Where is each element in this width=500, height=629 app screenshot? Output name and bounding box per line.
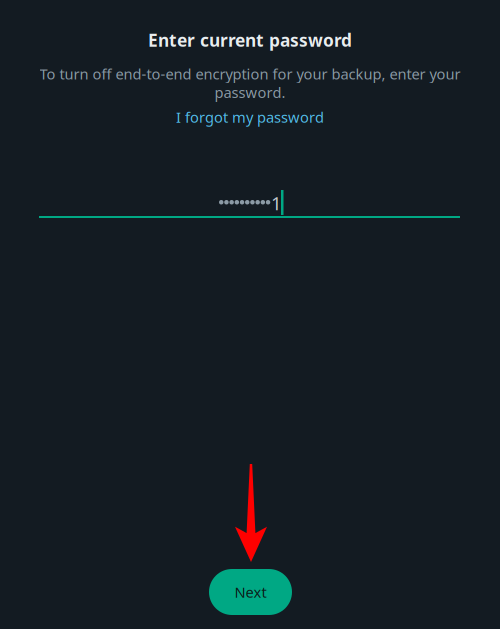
staticText: password. [214, 82, 285, 102]
staticText: Enter current password [148, 28, 352, 51]
staticText: I forgot my password [176, 107, 324, 127]
button[interactable]: Password [0, 0, 460, 218]
staticText: Next [234, 582, 266, 602]
staticText: 1 [271, 191, 282, 215]
button[interactable]: Next [209, 569, 292, 615]
staticText: To turn off end-to-end encryption for yo… [39, 64, 460, 83]
button[interactable]: I forgot my password [0, 108, 500, 126]
